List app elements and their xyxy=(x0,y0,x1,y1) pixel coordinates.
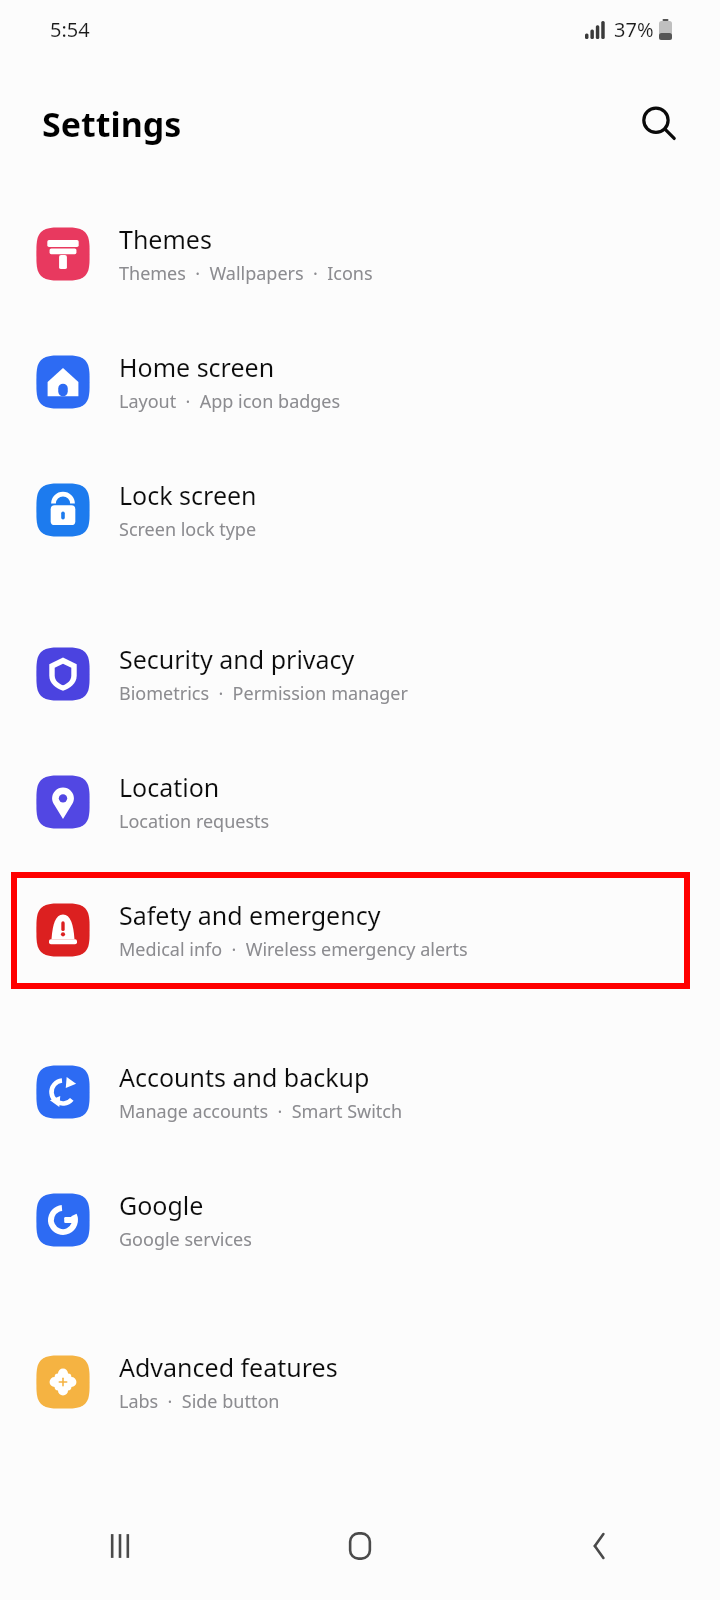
button[interactable]: Accounts and backup xyxy=(0,1028,720,1156)
button[interactable]: Lock screen xyxy=(0,446,720,574)
staticText: Advanced features xyxy=(119,1350,338,1384)
button[interactable]: Search xyxy=(628,93,690,155)
staticText: Location requests xyxy=(119,809,270,834)
staticText: Biometrics · Permission manager xyxy=(119,681,408,706)
button[interactable]: Google xyxy=(0,1156,720,1284)
staticText: Labs · Side button xyxy=(119,1389,280,1414)
button[interactable]: Safety and emergency xyxy=(0,866,720,994)
button[interactable]: Advanced features xyxy=(0,1318,720,1446)
button[interactable]: Home screen xyxy=(0,318,720,446)
button[interactable]: Themes xyxy=(0,190,720,318)
staticText: Home screen xyxy=(119,350,275,384)
button[interactable]: Security and privacy xyxy=(0,610,720,738)
staticText: Lock screen xyxy=(119,478,257,512)
staticText: Themes · Wallpapers · Icons xyxy=(119,261,373,286)
staticText: 37% xyxy=(614,16,654,43)
button[interactable]: Recent apps xyxy=(0,1492,240,1600)
button[interactable]: Back xyxy=(480,1492,720,1600)
staticText: Google xyxy=(119,1188,204,1222)
button[interactable]: Home xyxy=(240,1492,480,1600)
button[interactable]: Location xyxy=(0,738,720,866)
staticText: Manage accounts · Smart Switch xyxy=(119,1099,403,1124)
staticText: Location xyxy=(119,770,220,804)
staticText: Medical info · Wireless emergency alerts xyxy=(119,937,468,962)
staticText: Screen lock type xyxy=(119,517,257,542)
staticText: Layout · App icon badges xyxy=(119,389,341,414)
staticText: Accounts and backup xyxy=(119,1060,370,1094)
staticText: Google services xyxy=(119,1227,252,1252)
staticText: 5:54 xyxy=(50,16,90,43)
staticText: Themes xyxy=(119,222,212,256)
staticText: Settings xyxy=(42,101,182,147)
staticText: Safety and emergency xyxy=(119,898,381,932)
staticText: Security and privacy xyxy=(119,642,355,676)
